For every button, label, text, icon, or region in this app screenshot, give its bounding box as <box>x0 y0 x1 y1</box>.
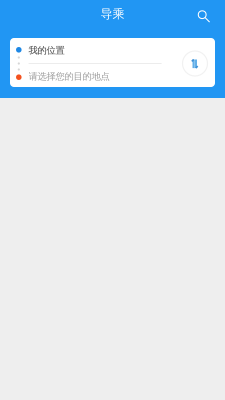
staticText: 我的位置 <box>29 45 65 56</box>
button[interactable]: 请选择您的目的地点 <box>29 64 164 87</box>
button[interactable]: Swap start and destination <box>175 39 215 86</box>
button[interactable]: 我的位置 <box>29 38 164 63</box>
staticText: 导乘 <box>100 7 124 21</box>
button[interactable]: Search <box>186 1 216 29</box>
staticText: 请选择您的目的地点 <box>29 71 110 82</box>
